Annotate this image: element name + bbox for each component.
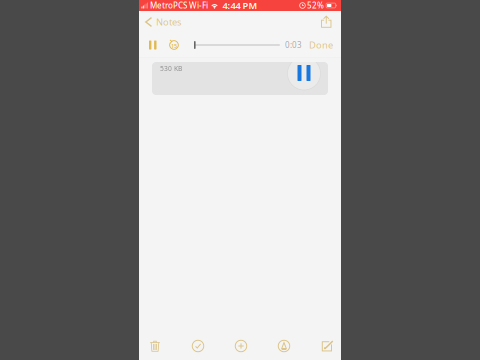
staticText: 4:44 PM — [222, 0, 257, 12]
staticText: Done — [309, 39, 333, 51]
button[interactable]: Notes — [139, 11, 188, 33]
button[interactable]: Pause recording — [287, 61, 321, 95]
button[interactable]: Delete — [142, 334, 168, 358]
staticText: 0:03 — [285, 40, 302, 50]
button[interactable]: Skip back 15 seconds — [162, 33, 185, 57]
staticText: MetroPCS Wi-Fi — [150, 0, 208, 11]
button[interactable]: Add attachment — [228, 334, 254, 358]
staticText: Notes — [156, 16, 181, 28]
staticText: 530 KB — [160, 64, 182, 73]
button[interactable]: New note — [314, 334, 340, 358]
staticText: 52% — [307, 0, 324, 11]
button[interactable]: Share — [315, 11, 341, 33]
button[interactable]: Checklist — [185, 334, 211, 358]
button[interactable]: Done — [302, 33, 341, 57]
staticText: 15 — [171, 42, 177, 49]
button[interactable]: Markup — [271, 334, 297, 358]
button[interactable]: Pause — [139, 33, 162, 57]
